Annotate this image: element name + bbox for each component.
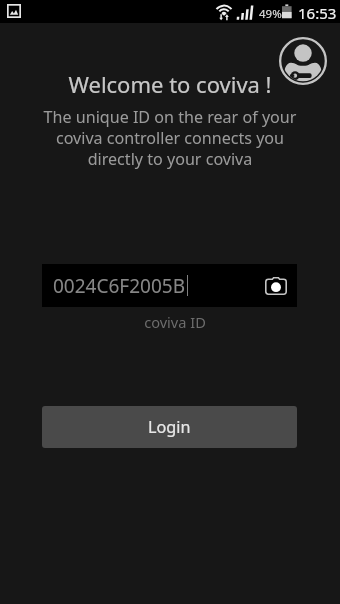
staticText: The unique ID on the rear of your coviva… — [0, 106, 340, 170]
staticText: Login — [148, 416, 191, 438]
button[interactable]: Login — [42, 406, 297, 448]
staticText: coviva ID — [5, 312, 340, 332]
button[interactable]: Account settings — [279, 37, 327, 85]
staticText: 16:53 — [298, 3, 337, 23]
staticText: 0024C6F2005B — [53, 273, 186, 299]
button[interactable]: 0024C6F2005B — [42, 264, 297, 307]
staticText: Welcome to coviva ! — [0, 69, 340, 99]
button[interactable]: Scan coviva ID with camera — [265, 277, 287, 295]
staticText: 49% — [259, 6, 282, 22]
